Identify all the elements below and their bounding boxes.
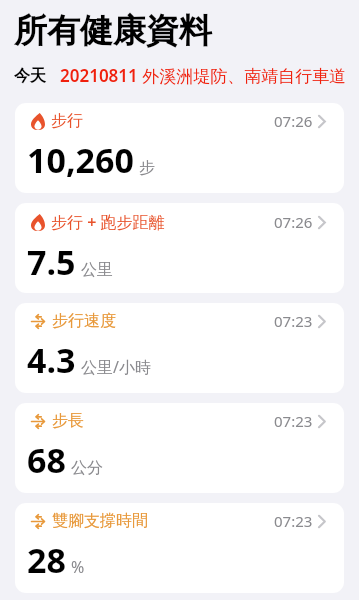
staticText: 雙腳支撐時間 (52, 511, 148, 531)
staticText: 10,260 (27, 137, 134, 183)
staticText: 步 (139, 158, 155, 178)
staticText: 20210811 外溪洲堤防、南靖自行車道 (60, 64, 347, 87)
staticText: 07:23 (274, 411, 313, 431)
button[interactable]: 步長 (15, 403, 344, 493)
staticText: 07:26 (274, 212, 313, 232)
staticText: 7.5 (27, 239, 76, 285)
button[interactable]: 雙腳支撐時間 (15, 503, 344, 593)
button[interactable]: 步行 (15, 103, 344, 193)
button[interactable]: 步行速度 (15, 303, 344, 393)
staticText: 68 (27, 437, 66, 483)
staticText: 公里 (81, 260, 113, 280)
staticText: 步行 (51, 111, 83, 131)
staticText: 4.3 (27, 337, 76, 383)
staticText: 07:23 (274, 511, 313, 531)
staticText: 所有健康資料 (14, 10, 212, 52)
staticText: 07:23 (274, 311, 313, 331)
staticText: 今天 (14, 66, 46, 86)
staticText: 28 (27, 537, 66, 583)
staticText: 步行速度 (52, 311, 116, 331)
staticText: 步行 + 跑步距離 (51, 211, 165, 233)
staticText: 07:26 (274, 111, 313, 131)
button[interactable]: 步行 + 跑步距離 (15, 203, 344, 293)
staticText: % (71, 556, 85, 578)
staticText: 步長 (52, 411, 84, 431)
staticText: 公分 (71, 458, 103, 478)
staticText: 公里/小時 (81, 356, 151, 378)
